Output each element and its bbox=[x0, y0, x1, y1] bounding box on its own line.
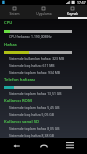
staticText: Kullanıcı sanal SD bbox=[4, 119, 39, 125]
staticText: CPU bbox=[4, 20, 13, 26]
button[interactable]: Recent apps bbox=[60, 138, 80, 154]
staticText: Sistemde toplam hafıza 5,45 GB bbox=[9, 105, 60, 110]
staticText: Sistemde kullanılan hafıza: 323 MB bbox=[9, 56, 65, 61]
staticText: Sistemde toplam hafıza 8,05 GB bbox=[9, 126, 60, 131]
staticText: Kullanıcı ROM bbox=[4, 98, 32, 104]
staticText: Sistemde boş hafıza 5,05 GB bbox=[9, 112, 54, 117]
staticText: Uygulama bbox=[36, 12, 52, 16]
staticText: Kaynak bbox=[67, 12, 78, 16]
staticText: Telefon hafızası bbox=[4, 77, 35, 83]
button[interactable]: Back bbox=[7, 138, 27, 154]
button[interactable]: Uygulama bbox=[29, 5, 58, 19]
staticText: Sistemde boş hafıza: 611 MB bbox=[9, 63, 55, 68]
staticText: 17:57 bbox=[77, 0, 86, 5]
staticText: CPU frekansı: 1.190,00MHz bbox=[9, 34, 52, 39]
staticText: Sistemde toplam hafıza 13,51 GB bbox=[9, 91, 62, 96]
button[interactable]: Sistem bbox=[0, 5, 29, 19]
staticText: Sistemde toplam hafıza: 934 MB bbox=[9, 70, 61, 75]
button[interactable]: Kaynak bbox=[58, 5, 87, 19]
staticText: Hafıza bbox=[4, 42, 17, 48]
staticText: Sistemde boş hafıza 8,38 GB bbox=[9, 133, 54, 138]
staticText: Sistem bbox=[9, 12, 20, 16]
button[interactable]: Home bbox=[34, 138, 54, 154]
